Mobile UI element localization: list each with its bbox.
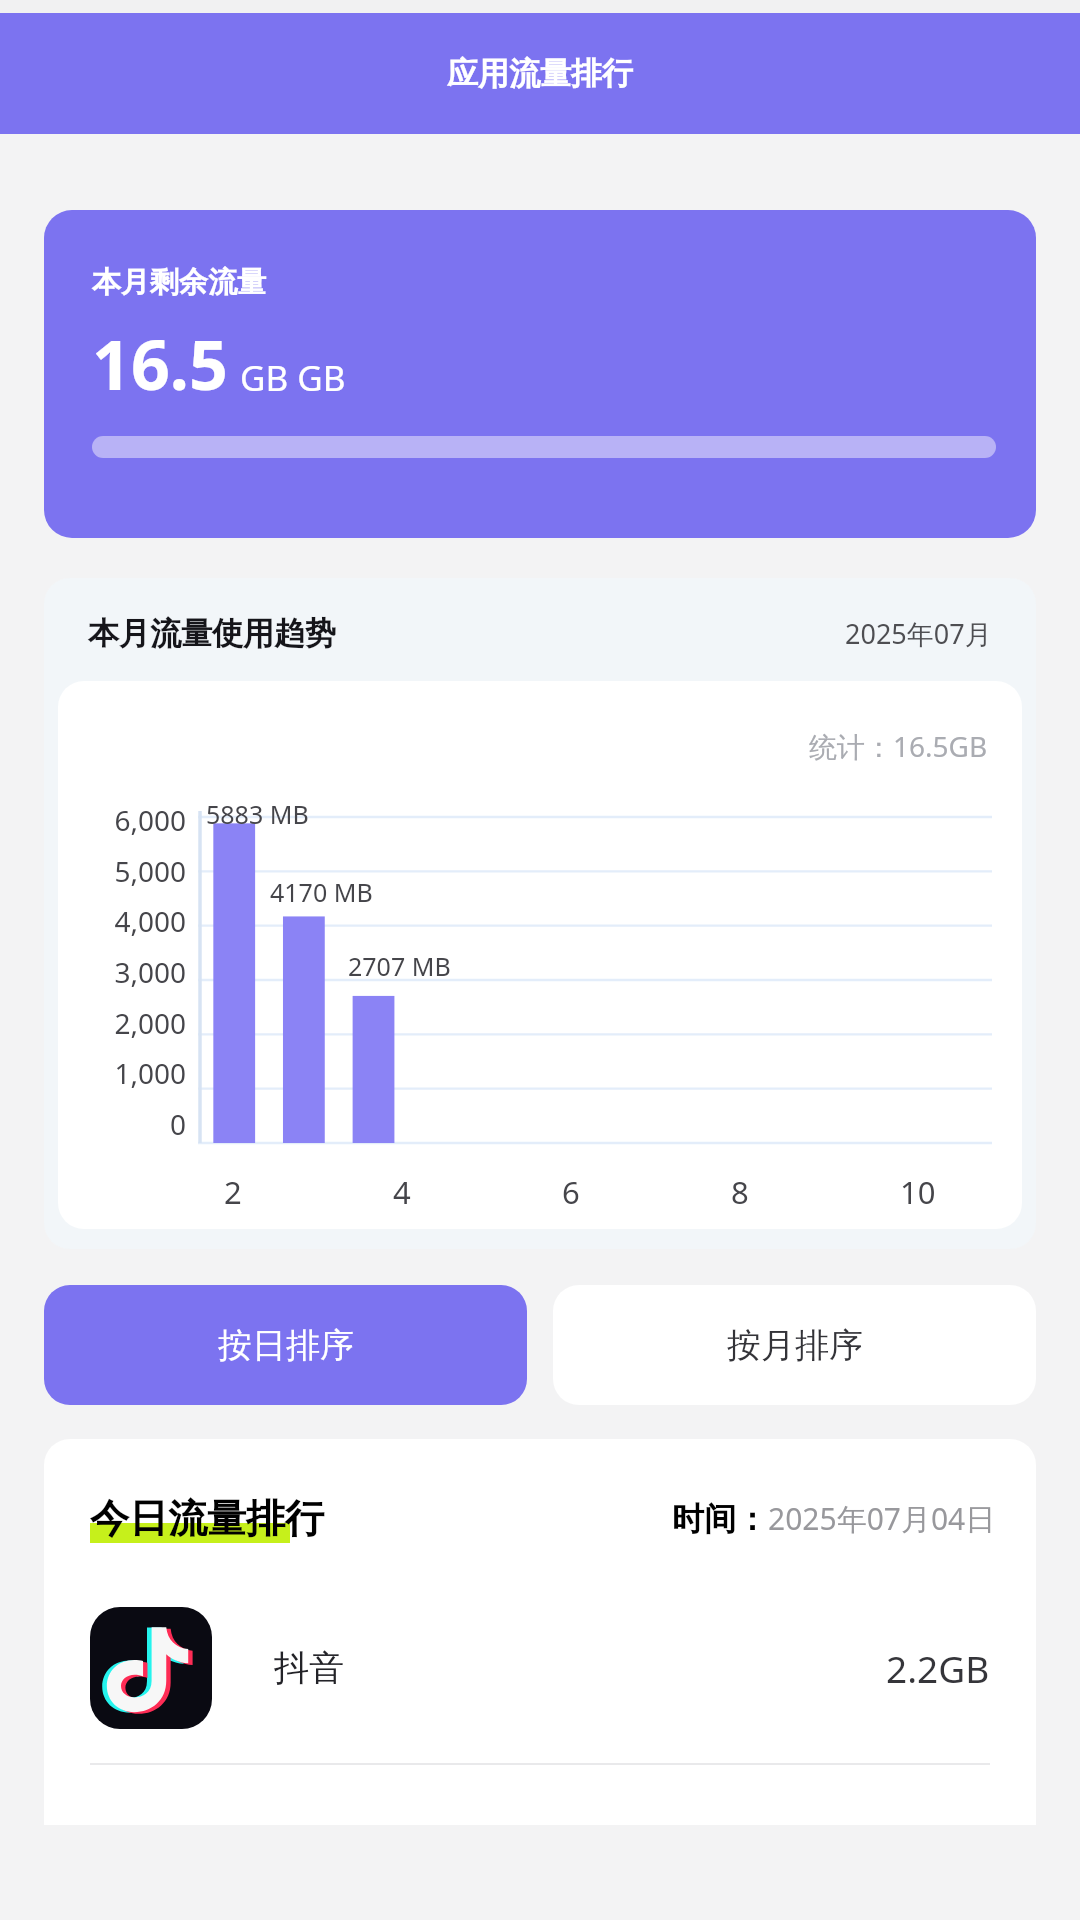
- staticText: 时间：: [672, 1499, 768, 1539]
- staticText: 2025年07月04日: [768, 1498, 996, 1539]
- staticText: 按日排序: [218, 1324, 354, 1367]
- staticText: 5883 MB: [206, 797, 309, 831]
- staticText: 统计：16.5GB: [809, 727, 988, 765]
- staticText: 6,000: [80, 801, 186, 839]
- staticText: 1,000: [80, 1054, 186, 1092]
- staticText: 0: [80, 1105, 186, 1143]
- staticText: 2025年07月: [845, 615, 992, 652]
- staticText: 应用流量排行: [447, 54, 633, 93]
- staticText: GB GB: [240, 354, 346, 402]
- staticText: 按月排序: [727, 1324, 863, 1367]
- staticText: 抖音: [274, 1646, 344, 1690]
- button[interactable]: 抖音: [44, 1595, 1036, 1763]
- staticText: 2.2GB: [886, 1643, 990, 1693]
- staticText: 6: [562, 1171, 580, 1213]
- staticText: 8: [731, 1171, 749, 1213]
- staticText: 5,000: [80, 852, 186, 890]
- staticText: 10: [900, 1171, 936, 1213]
- staticText: 2,000: [80, 1004, 186, 1042]
- button[interactable]: 按日排序: [44, 1285, 527, 1405]
- button[interactable]: 按月排序: [553, 1285, 1036, 1405]
- staticText: 4: [393, 1171, 411, 1213]
- staticText: 本月流量使用趋势: [88, 614, 336, 653]
- staticText: 2707 MB: [348, 949, 451, 983]
- staticText: 4170 MB: [270, 875, 373, 909]
- button[interactable]: 本月剩余流量: [44, 210, 1036, 538]
- staticText: 4,000: [80, 902, 186, 940]
- staticText: 3,000: [80, 953, 186, 991]
- staticText: 2: [224, 1171, 242, 1213]
- staticText: 16.5: [92, 317, 228, 410]
- staticText: 今日流量排行: [90, 1494, 324, 1543]
- staticText: 本月剩余流量: [92, 264, 266, 301]
- other: 抖音: [90, 1607, 212, 1729]
